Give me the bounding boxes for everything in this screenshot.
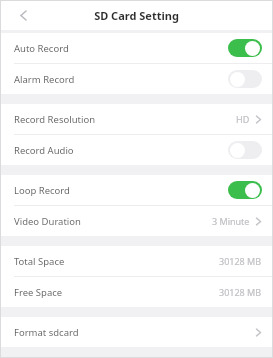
button[interactable]: Back bbox=[13, 5, 33, 25]
button[interactable]: Alarm Record bbox=[0, 64, 273, 94]
button[interactable]: Format sdcard bbox=[0, 317, 273, 347]
button[interactable]: Loop Record on bbox=[228, 181, 262, 199]
button[interactable]: Loop Record bbox=[0, 175, 273, 205]
staticText: Alarm Record bbox=[14, 73, 75, 86]
button[interactable]: Total Space bbox=[0, 246, 273, 276]
staticText: 30128 MB bbox=[219, 286, 262, 298]
staticText: Format sdcard bbox=[14, 326, 79, 339]
staticText: Loop Record bbox=[14, 184, 70, 197]
button[interactable]: Alarm Record off bbox=[228, 70, 262, 88]
staticText: 30128 MB bbox=[219, 255, 262, 267]
staticText: Total Space bbox=[14, 255, 65, 268]
button[interactable]: Record Audio off bbox=[228, 141, 262, 159]
staticText: Free Space bbox=[14, 286, 63, 299]
button[interactable]: Record Audio bbox=[0, 135, 273, 165]
staticText: SD Card Setting bbox=[94, 8, 179, 23]
staticText: Auto Record bbox=[14, 42, 69, 55]
staticText: Record Resolution bbox=[14, 113, 96, 126]
button[interactable]: Auto Record bbox=[0, 33, 273, 63]
button[interactable]: Record Resolution bbox=[0, 104, 273, 134]
staticText: 3 Minute bbox=[212, 215, 250, 227]
staticText: Video Duration bbox=[14, 215, 81, 228]
staticText: HD bbox=[236, 113, 250, 125]
button[interactable]: Video Duration bbox=[0, 206, 273, 236]
staticText: Record Audio bbox=[14, 144, 74, 157]
button[interactable]: Free Space bbox=[0, 277, 273, 307]
button[interactable]: Auto Record on bbox=[228, 39, 262, 57]
